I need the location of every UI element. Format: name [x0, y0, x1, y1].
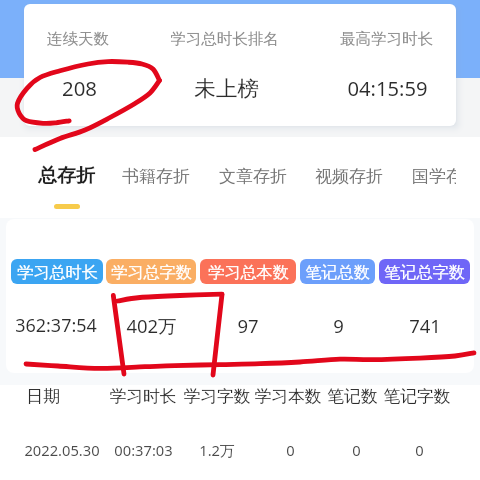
- staticText: 学习时长: [109, 386, 177, 407]
- staticText: 笔记总字数: [384, 262, 465, 282]
- staticText: 书籍存折: [122, 166, 190, 187]
- staticText: 00:37:03: [114, 440, 173, 460]
- button[interactable]: 总存折: [21, 157, 111, 195]
- staticText: 741: [409, 313, 441, 338]
- staticText: 学习总字数: [111, 262, 192, 282]
- button[interactable]: 视频存折: [304, 157, 394, 195]
- staticText: 国学存折: [412, 166, 456, 187]
- staticText: 04:15:59: [347, 74, 428, 102]
- staticText: 日期: [26, 386, 60, 407]
- button[interactable]: 书籍存折: [111, 157, 201, 195]
- staticText: 0: [415, 440, 424, 460]
- button[interactable]: [0, 432, 480, 468]
- button[interactable]: 文章存折: [208, 157, 298, 195]
- staticText: 最高学习时长: [340, 29, 433, 49]
- staticText: 208: [62, 74, 97, 102]
- staticText: 笔记数: [327, 386, 378, 407]
- staticText: 1.2万: [199, 440, 235, 460]
- button[interactable]: 国学存折: [401, 157, 456, 195]
- staticText: 97: [237, 313, 259, 338]
- staticText: 连续天数: [47, 29, 109, 49]
- staticText: 362:37:54: [15, 313, 97, 338]
- staticText: 0: [286, 440, 295, 460]
- staticText: 402万: [126, 313, 177, 338]
- staticText: 总存折: [38, 164, 95, 188]
- button[interactable]: 学习总本数: [200, 259, 296, 284]
- button[interactable]: 学习总字数: [106, 259, 196, 284]
- button[interactable]: 笔记总字数: [379, 259, 470, 284]
- button[interactable]: 笔记总数: [300, 259, 375, 284]
- button[interactable]: 学习总时长: [11, 259, 103, 284]
- staticText: 未上榜: [194, 75, 259, 102]
- staticText: 视频存折: [315, 166, 383, 187]
- staticText: 学习总时长: [17, 262, 98, 282]
- button[interactable]: [0, 380, 480, 412]
- staticText: 学习总本数: [208, 262, 289, 282]
- button[interactable]: [24, 4, 456, 126]
- staticText: 学习字数: [183, 386, 251, 407]
- staticText: 笔记字数: [383, 386, 451, 407]
- staticText: 学习本数: [254, 386, 322, 407]
- staticText: 笔记总数: [305, 262, 370, 282]
- staticText: 学习总时长排名: [170, 29, 279, 49]
- staticText: 文章存折: [219, 166, 287, 187]
- staticText: 2022.05.30: [24, 440, 100, 460]
- staticText: 0: [352, 440, 361, 460]
- staticText: 9: [333, 313, 344, 338]
